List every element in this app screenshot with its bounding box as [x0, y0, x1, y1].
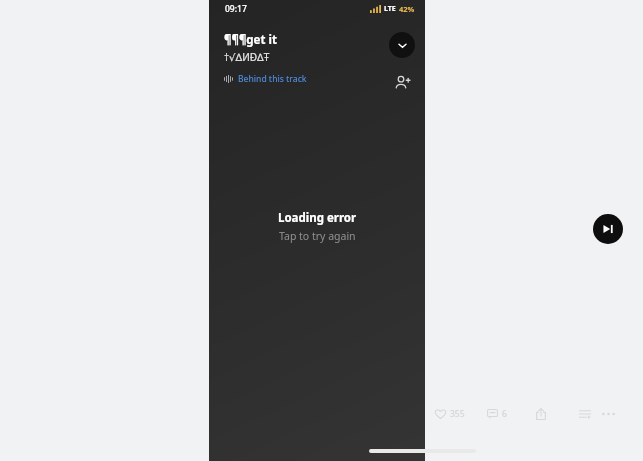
staticText: 42% — [399, 4, 415, 14]
staticText: Loading error — [278, 210, 357, 226]
button[interactable]: 6 — [487, 404, 507, 424]
staticText: 6 — [502, 408, 507, 420]
staticText: Behind this track — [238, 73, 307, 85]
staticText: †√∆ИÐ∆Ŧ — [224, 50, 270, 64]
staticText: 355 — [450, 408, 465, 420]
staticText: Tap to try again — [279, 229, 356, 243]
button[interactable]: 355 — [435, 404, 465, 424]
staticText: 09:17 — [225, 3, 247, 15]
button[interactable]: Add to followers — [391, 71, 413, 93]
button[interactable]: More options — [598, 404, 618, 424]
button[interactable]: Behind this track — [224, 73, 307, 85]
button[interactable]: Add to next up — [575, 404, 595, 424]
button[interactable]: Collapse player — [389, 32, 415, 58]
button[interactable]: Skip to next track — [593, 214, 623, 244]
staticText: ¶¶¶get it — [224, 32, 277, 48]
button[interactable]: Share — [531, 404, 551, 424]
staticText: LTE — [384, 4, 396, 14]
button[interactable]: Loading error — [260, 206, 375, 247]
